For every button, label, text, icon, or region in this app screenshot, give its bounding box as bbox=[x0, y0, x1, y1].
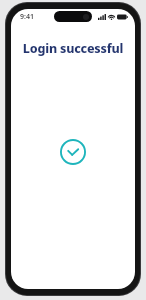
button[interactable]: Success bbox=[60, 139, 86, 165]
staticText: 9:41 bbox=[20, 12, 34, 22]
staticText: Login successful bbox=[17, 40, 129, 57]
